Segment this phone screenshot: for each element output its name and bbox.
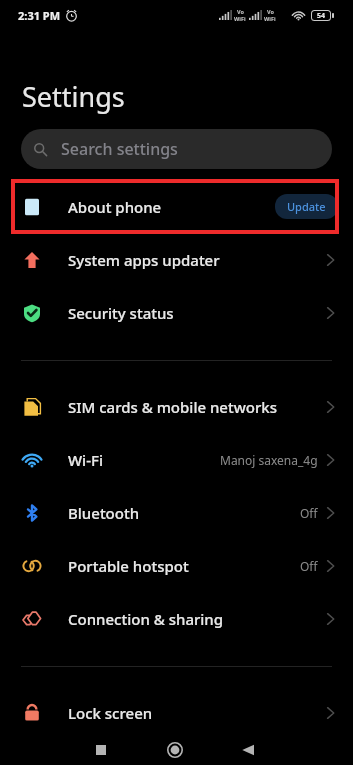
staticText: 2:31 PM [18,8,61,23]
button[interactable]: Recent apps [64,734,138,765]
staticText: Wi-Fi [68,450,103,470]
staticText: WiFi [234,15,246,22]
button[interactable]: Lock screen [0,686,353,739]
button[interactable]: Home [138,734,212,765]
button[interactable]: Bluetooth [0,486,353,539]
button[interactable]: SIM cards & mobile networks [0,380,353,433]
staticText: Update [287,199,326,214]
button[interactable]: Portable hotspot [0,539,353,592]
button[interactable]: Update [275,194,338,219]
staticText: Connection & sharing [68,609,224,629]
staticText: Manoj saxena_4g [220,452,318,468]
button[interactable]: About phone [0,180,353,233]
staticText: SIM cards & mobile networks [68,397,277,417]
button[interactable]: System apps updater [0,233,353,286]
staticText: Lock screen [68,703,153,723]
button[interactable]: Back [211,734,285,765]
button[interactable]: Search settings [21,129,332,169]
staticText: Off [300,558,318,574]
staticText: Vo [237,8,244,15]
staticText: Security status [68,303,174,323]
staticText: Settings [22,78,125,115]
staticText: Portable hotspot [68,556,189,576]
button[interactable]: Connection & sharing [0,592,353,645]
staticText: WiFi [264,15,276,22]
button[interactable]: Wi-Fi [0,433,353,486]
staticText: Bluetooth [68,503,140,523]
staticText: Vo [267,8,274,15]
staticText: About phone [68,197,162,217]
staticText: Search settings [61,138,178,160]
button[interactable]: Security status [0,286,353,339]
staticText: System apps updater [68,250,220,270]
staticText: Off [300,505,318,521]
staticText: 54 [317,11,326,20]
